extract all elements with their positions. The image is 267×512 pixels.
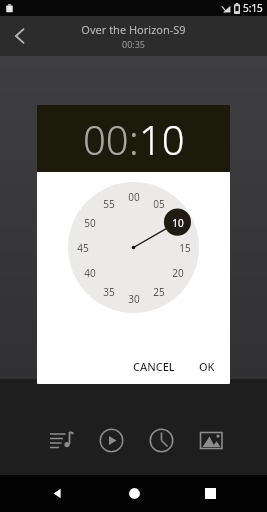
button[interactable]: 05: [148, 193, 170, 215]
staticText: 20: [172, 266, 184, 280]
staticText: 35: [103, 285, 115, 299]
button[interactable]: Play: [92, 421, 130, 459]
button[interactable]: 00: [83, 112, 129, 166]
staticText: 00: [128, 190, 140, 204]
staticText: 25: [153, 285, 165, 299]
button[interactable]: 00: [123, 186, 145, 208]
staticText: 00:35: [122, 38, 146, 50]
staticText: 30: [128, 292, 140, 306]
button[interactable]: 10: [139, 112, 185, 166]
button[interactable]: Back: [38, 475, 76, 512]
staticText: CANCEL: [133, 359, 175, 374]
button[interactable]: 35: [98, 281, 120, 303]
button[interactable]: Home: [115, 475, 153, 512]
button[interactable]: Back: [0, 16, 40, 56]
button[interactable]: 40: [79, 262, 101, 284]
staticText: 55: [103, 197, 115, 211]
staticText: OK: [199, 359, 215, 374]
staticText: 05: [153, 197, 165, 211]
button[interactable]: Image: [192, 421, 230, 459]
button[interactable]: 50: [79, 212, 101, 234]
button[interactable]: Playlist: [42, 421, 80, 459]
staticText: 5:15: [243, 1, 263, 15]
staticText: 10: [172, 216, 184, 230]
button[interactable]: 25: [148, 281, 170, 303]
button[interactable]: 45: [72, 237, 94, 259]
button[interactable]: Timer: [142, 421, 180, 459]
button[interactable]: Recents: [191, 475, 229, 512]
button[interactable]: CANCEL: [124, 351, 184, 382]
staticText: :: [129, 112, 139, 166]
staticText: 45: [77, 241, 89, 255]
button[interactable]: 55: [98, 193, 120, 215]
staticText: Over the Horizon-S9: [81, 22, 186, 37]
staticText: 40: [84, 266, 96, 280]
button[interactable]: 15: [174, 237, 196, 259]
staticText: 50: [84, 216, 96, 230]
button[interactable]: 30: [123, 288, 145, 310]
button[interactable]: OK: [190, 351, 224, 382]
button[interactable]: 10: [167, 212, 189, 234]
staticText: 15: [179, 241, 191, 255]
button[interactable]: 20: [167, 262, 189, 284]
